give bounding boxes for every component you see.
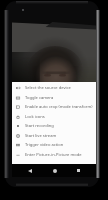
staticText: Start live stream — [25, 133, 57, 139]
button[interactable]: Back — [23, 164, 36, 177]
button[interactable]: Lock icons — [12, 112, 96, 122]
staticText: Start recording — [25, 123, 54, 129]
button[interactable]: Home — [48, 164, 61, 177]
button[interactable]: Start live stream — [12, 131, 96, 141]
staticText: Enter Picture-in-Picture mode — [25, 152, 82, 158]
staticText: Trigger video action — [25, 142, 64, 148]
button[interactable]: Recent apps — [72, 164, 85, 177]
button[interactable]: Enable auto crop (mode transform) — [12, 102, 96, 112]
button[interactable]: Start recording — [12, 121, 96, 131]
button[interactable]: Toggle camera — [12, 93, 96, 103]
button[interactable]: Enter Picture-in-Picture mode — [12, 150, 96, 160]
staticText: Enable auto crop (mode transform) — [25, 104, 93, 110]
staticText: Select the source device — [25, 85, 71, 91]
staticText: Lock icons — [25, 114, 45, 120]
button[interactable]: Trigger video action — [12, 140, 96, 150]
button[interactable]: Select the source device — [12, 83, 96, 93]
staticText: Toggle camera — [25, 95, 54, 101]
